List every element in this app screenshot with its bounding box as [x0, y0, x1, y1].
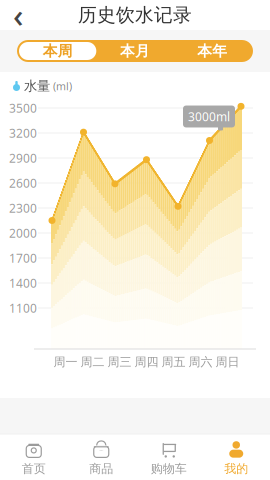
- staticText: 本年: [197, 42, 227, 60]
- staticText: 1400: [9, 275, 37, 291]
- staticText: 购物车: [151, 461, 187, 476]
- staticText: 2600: [9, 175, 37, 191]
- staticText: 2300: [9, 200, 37, 216]
- staticText: 商品: [89, 461, 113, 476]
- staticText: 1100: [9, 300, 37, 316]
- staticText: 3000ml: [188, 108, 230, 124]
- staticText: 我的: [224, 461, 248, 476]
- staticText: 周日: [215, 355, 239, 369]
- button[interactable]: 本年: [174, 42, 251, 60]
- staticText: 2900: [9, 150, 37, 166]
- staticText: 周四: [134, 355, 158, 369]
- staticText: 周三: [107, 355, 131, 369]
- staticText: 2000: [9, 225, 37, 241]
- staticText: ‹: [13, 0, 23, 36]
- staticText: 历史饮水记录: [78, 3, 192, 26]
- staticText: 3500: [9, 100, 37, 116]
- staticText: 本周: [43, 42, 73, 60]
- staticText: 1700: [9, 250, 37, 266]
- button[interactable]: 首页: [0, 434, 67, 480]
- staticText: (ml): [53, 79, 72, 93]
- staticText: 周二: [80, 355, 104, 369]
- button[interactable]: 我的: [202, 434, 270, 480]
- button[interactable]: 商品: [67, 434, 135, 480]
- staticText: 周一: [53, 355, 77, 369]
- staticText: 3200: [9, 125, 37, 141]
- staticText: 周六: [188, 355, 212, 369]
- staticText: 水量: [24, 78, 50, 94]
- staticText: 周五: [161, 355, 185, 369]
- button[interactable]: Back: [0, 0, 36, 30]
- button[interactable]: 本周: [19, 42, 96, 60]
- button[interactable]: 本月: [96, 42, 174, 60]
- staticText: 本月: [120, 42, 150, 60]
- button[interactable]: 购物车: [135, 434, 202, 480]
- staticText: 首页: [22, 461, 46, 476]
